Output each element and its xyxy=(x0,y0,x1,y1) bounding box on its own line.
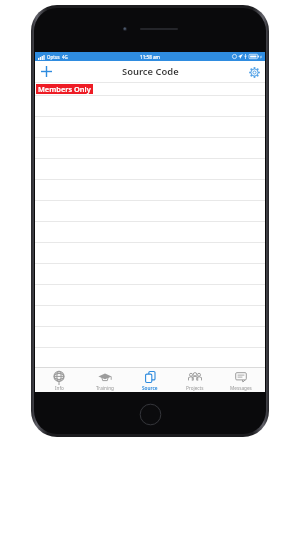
staticText: Projects xyxy=(186,385,204,391)
staticText: Source Code xyxy=(122,65,179,78)
staticText: Members Only xyxy=(38,84,91,94)
staticText: Messages xyxy=(230,385,252,391)
staticText: Info xyxy=(55,385,64,391)
staticText: Optus xyxy=(47,54,60,60)
button[interactable]: Source xyxy=(129,368,171,392)
button[interactable]: Info xyxy=(38,368,80,392)
button[interactable]: Members Only xyxy=(35,83,265,95)
staticText: 11:58 am xyxy=(140,54,160,60)
staticText: Source xyxy=(142,385,158,391)
button[interactable]: Add xyxy=(38,63,55,80)
staticText: Training xyxy=(96,385,114,391)
button[interactable]: Messages xyxy=(220,368,262,392)
button[interactable]: Projects xyxy=(174,368,216,392)
button[interactable]: Training xyxy=(84,368,126,392)
button[interactable]: Settings xyxy=(246,64,262,80)
staticText: 4G xyxy=(62,54,68,60)
